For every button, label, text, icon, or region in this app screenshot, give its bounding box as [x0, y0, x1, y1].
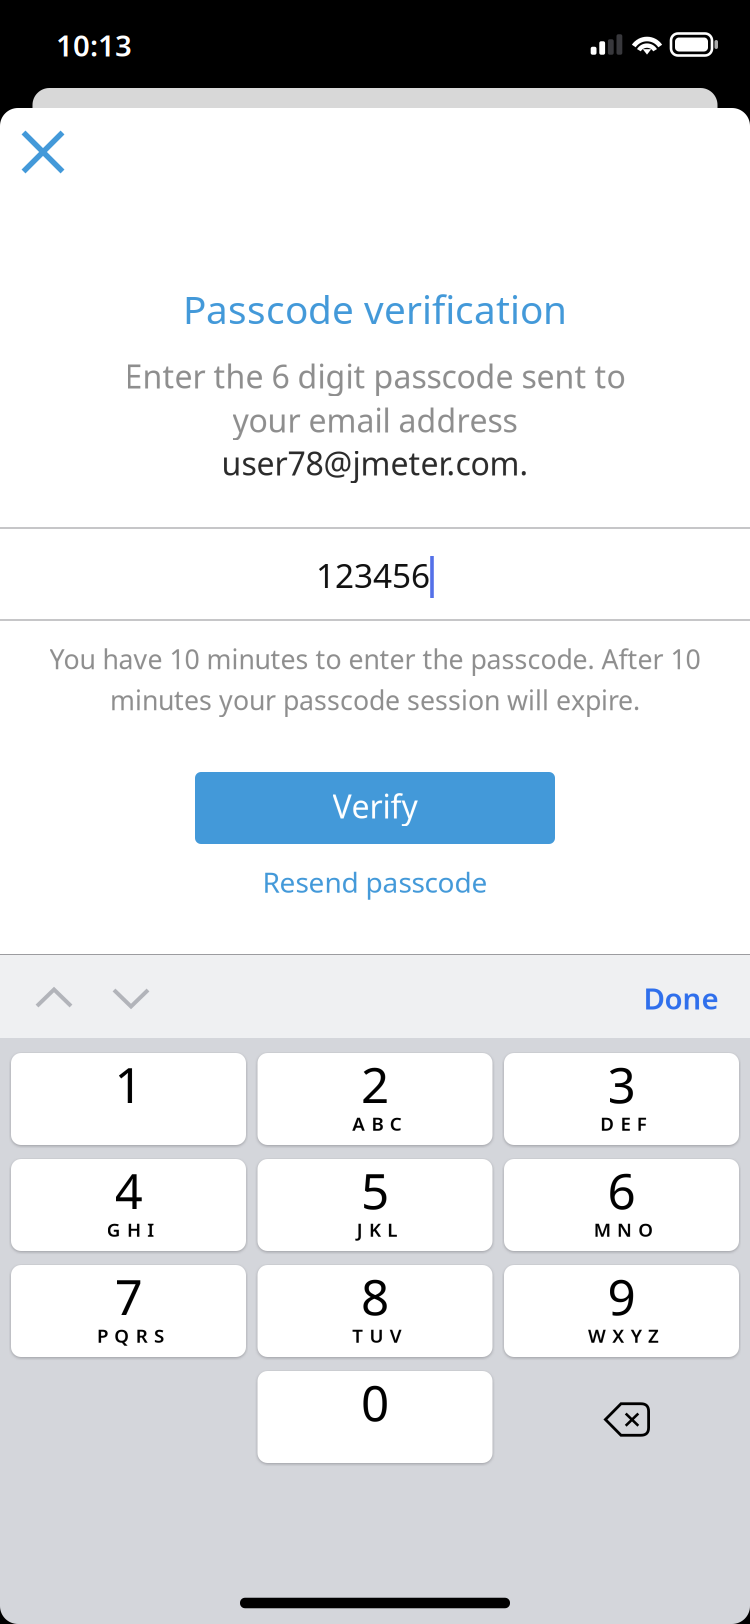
- button[interactable]: 1: [11, 1053, 246, 1145]
- staticText: 10:13: [56, 25, 132, 64]
- button[interactable]: Resend passcode: [248, 851, 501, 913]
- button[interactable]: Next field: [90, 965, 172, 1030]
- staticText: Verify: [332, 785, 417, 827]
- button[interactable]: Previous field: [13, 965, 95, 1030]
- staticText: Resend passcode: [262, 863, 487, 901]
- staticText: PQRS: [97, 1323, 164, 1348]
- button[interactable]: 4: [11, 1159, 246, 1251]
- button[interactable]: Done: [625, 960, 736, 1035]
- staticText: 2: [361, 1051, 389, 1117]
- staticText: JKL: [357, 1217, 397, 1242]
- staticText: WXYZ: [588, 1323, 659, 1348]
- button[interactable]: Verify: [195, 772, 555, 844]
- button[interactable]: 5: [257, 1159, 492, 1251]
- staticText: your email address: [232, 399, 517, 441]
- staticText: 1: [114, 1051, 142, 1117]
- button[interactable]: 9: [504, 1265, 739, 1357]
- staticText: You have 10 minutes to enter the passcod…: [49, 641, 700, 677]
- button[interactable]: 0: [257, 1371, 492, 1463]
- staticText: MNO: [594, 1217, 653, 1242]
- staticText: 0: [361, 1369, 389, 1435]
- staticText: ABC: [352, 1111, 402, 1136]
- staticText: 3: [607, 1051, 635, 1117]
- staticText: DEF: [600, 1111, 647, 1136]
- button[interactable]: Close: [8, 117, 77, 186]
- staticText: 7: [114, 1263, 142, 1329]
- button[interactable]: Delete: [504, 1371, 739, 1463]
- button[interactable]: 7: [11, 1265, 246, 1357]
- button[interactable]: 3: [504, 1053, 739, 1145]
- staticText: GHI: [107, 1217, 154, 1242]
- staticText: 5: [361, 1157, 389, 1223]
- staticText: Passcode verification: [183, 283, 567, 335]
- staticText: user78@jmeter.com.: [221, 442, 528, 484]
- button[interactable]: 2: [257, 1053, 492, 1145]
- staticText: Done: [643, 978, 718, 1017]
- button[interactable]: 8: [257, 1265, 492, 1357]
- button[interactable]: 6: [504, 1159, 739, 1251]
- staticText: 4: [114, 1157, 142, 1223]
- staticText: Enter the 6 digit passcode sent to: [124, 355, 625, 397]
- staticText: 8: [361, 1263, 389, 1329]
- staticText: 9: [607, 1263, 635, 1329]
- staticText: minutes your passcode session will expir…: [110, 682, 640, 718]
- staticText: TUV: [352, 1323, 402, 1348]
- staticText: 123456: [316, 553, 430, 597]
- staticText: 6: [607, 1157, 635, 1223]
